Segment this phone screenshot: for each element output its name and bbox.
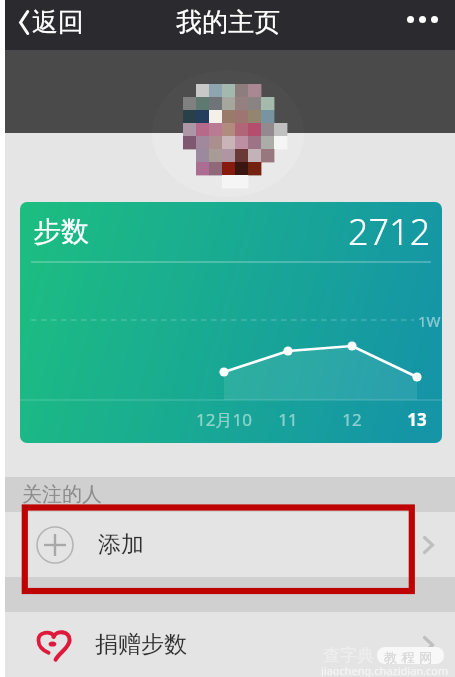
staticText: 添加 <box>98 530 144 559</box>
staticText: jiaocheng.chazidian.com <box>321 663 449 677</box>
staticText: 我的主页 <box>176 6 280 39</box>
button[interactable]: More options <box>394 0 450 50</box>
button[interactable]: 添加 <box>0 512 455 577</box>
staticText: 11 <box>278 408 298 431</box>
staticText: 教 程 网 <box>384 648 433 666</box>
staticText: 2712 <box>348 207 431 256</box>
staticText: 12 <box>342 408 362 431</box>
staticText: 关注的人 <box>22 482 102 507</box>
button[interactable]: 步数 <box>20 202 442 443</box>
staticText: 12月10 <box>196 408 252 431</box>
staticText: 查字典 <box>323 645 374 666</box>
button[interactable]: 返回 <box>0 0 98 44</box>
staticText: 返回 <box>32 6 84 39</box>
button[interactable]: 捐赠步数 <box>0 612 455 677</box>
staticText: 1W <box>418 311 441 331</box>
staticText: 步数 <box>33 214 89 249</box>
staticText: 捐赠步数 <box>95 630 187 659</box>
staticText: 13 <box>407 408 427 431</box>
